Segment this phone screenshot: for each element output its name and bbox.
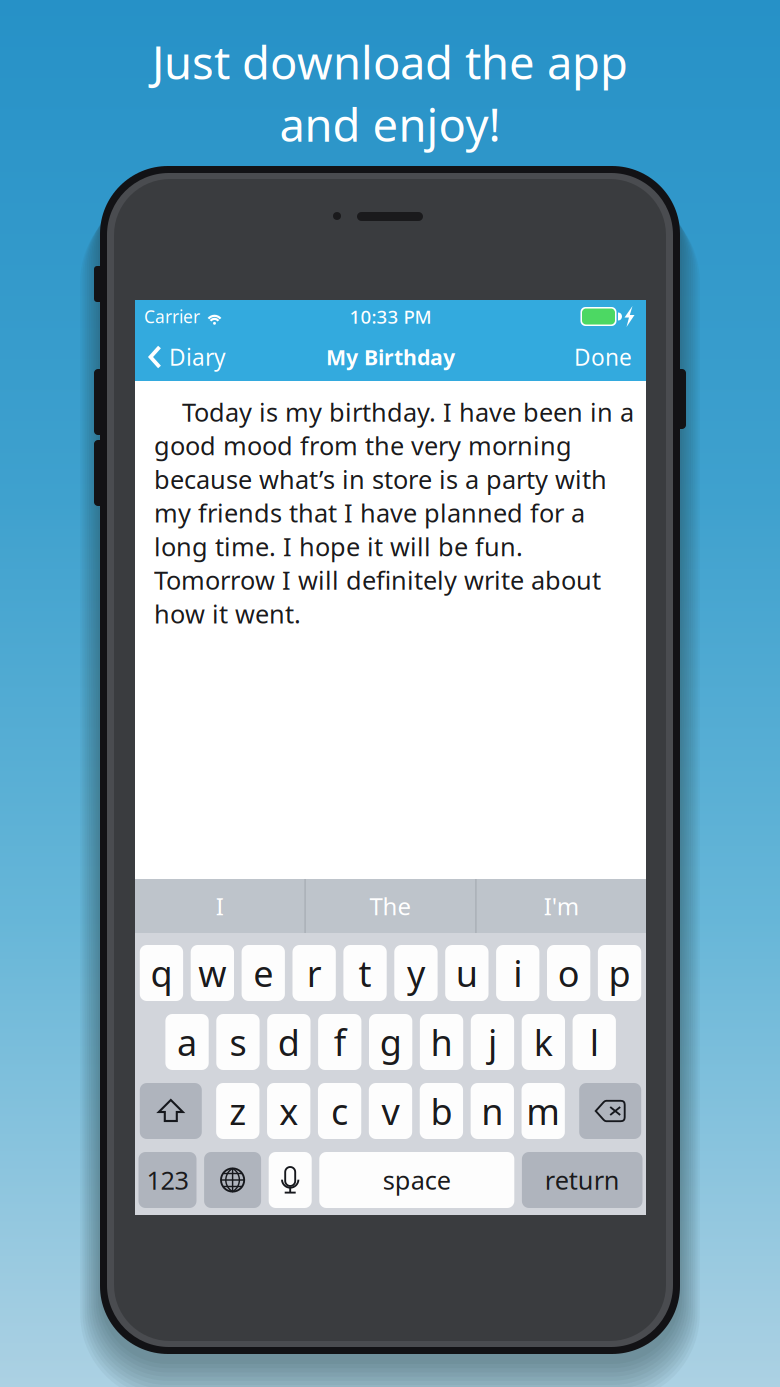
button[interactable]: h	[420, 1014, 463, 1070]
button[interactable]: a	[165, 1014, 209, 1070]
button[interactable]: s	[216, 1014, 260, 1070]
button[interactable]: 123	[138, 1152, 196, 1208]
staticText: j	[488, 1018, 497, 1066]
button[interactable]: I	[135, 879, 304, 933]
button[interactable]	[269, 1152, 312, 1208]
staticText: h	[430, 1018, 452, 1066]
staticText: a	[177, 1018, 197, 1066]
button[interactable]	[579, 1083, 641, 1139]
staticText: p	[608, 949, 630, 997]
button[interactable]: return	[522, 1152, 642, 1208]
staticText: u	[456, 949, 478, 997]
button[interactable]: e	[242, 945, 285, 1001]
staticText: o	[558, 949, 580, 997]
button[interactable]: Done	[554, 340, 632, 374]
staticText: f	[334, 1018, 346, 1066]
staticText: s	[229, 1018, 246, 1066]
staticText: l	[590, 1018, 599, 1066]
staticText: d	[278, 1018, 300, 1066]
button[interactable]: g	[369, 1014, 412, 1070]
staticText: return	[545, 1163, 620, 1197]
button[interactable]: space	[319, 1152, 514, 1208]
staticText: e	[253, 949, 273, 997]
staticText: and enjoy!	[279, 94, 500, 154]
button[interactable]: I'm	[477, 879, 646, 933]
staticText: n	[481, 1087, 503, 1135]
staticText: z	[229, 1087, 246, 1135]
button[interactable]: u	[445, 945, 488, 1001]
button[interactable]: t	[343, 945, 387, 1001]
button[interactable]: Diary	[149, 340, 253, 374]
staticText: i	[513, 949, 522, 997]
staticText: m	[526, 1087, 560, 1135]
button[interactable]: p	[598, 945, 641, 1001]
staticText: My Birthday	[326, 343, 455, 371]
staticText: Done	[574, 342, 632, 372]
staticText: 123	[146, 1163, 188, 1197]
button[interactable]: o	[547, 945, 590, 1001]
staticText: r	[307, 949, 322, 997]
staticText: I	[216, 890, 224, 922]
staticText: The	[369, 890, 411, 922]
staticText: Diary	[169, 342, 226, 372]
staticText: k	[534, 1018, 553, 1066]
staticText: Just download the app	[152, 32, 628, 92]
staticText: c	[331, 1087, 348, 1135]
button[interactable]: j	[471, 1014, 514, 1070]
staticText: 10:33 PM	[349, 304, 431, 329]
button[interactable]: l	[573, 1014, 616, 1070]
button[interactable]: f	[318, 1014, 361, 1070]
staticText: I'm	[544, 890, 579, 922]
button[interactable]: q	[140, 945, 183, 1001]
button[interactable]: m	[521, 1083, 565, 1139]
button[interactable]: z	[216, 1083, 259, 1139]
button[interactable]	[204, 1152, 261, 1208]
staticText: x	[279, 1087, 298, 1135]
button[interactable]: k	[522, 1014, 565, 1070]
button[interactable]: w	[191, 945, 234, 1001]
staticText: Carrier	[144, 305, 200, 328]
staticText: q	[150, 949, 172, 997]
staticText: b	[430, 1087, 452, 1135]
button[interactable]: r	[292, 945, 336, 1001]
button[interactable]: y	[394, 945, 438, 1001]
staticText: t	[358, 949, 371, 997]
staticText: g	[380, 1018, 402, 1066]
staticText: space	[383, 1163, 451, 1197]
button[interactable]: b	[420, 1083, 463, 1139]
button[interactable]: i	[496, 945, 539, 1001]
button[interactable]: x	[267, 1083, 310, 1139]
staticText: y	[407, 949, 425, 997]
button[interactable]: n	[471, 1083, 514, 1139]
button[interactable]: d	[267, 1014, 310, 1070]
button[interactable]: The	[306, 879, 475, 933]
staticText: v	[381, 1087, 399, 1135]
button[interactable]: c	[318, 1083, 361, 1139]
staticText: Today is my birthday. I have been in a g…	[154, 395, 634, 630]
button[interactable]: v	[369, 1083, 412, 1139]
button[interactable]	[140, 1083, 202, 1139]
staticText: w	[198, 949, 226, 997]
